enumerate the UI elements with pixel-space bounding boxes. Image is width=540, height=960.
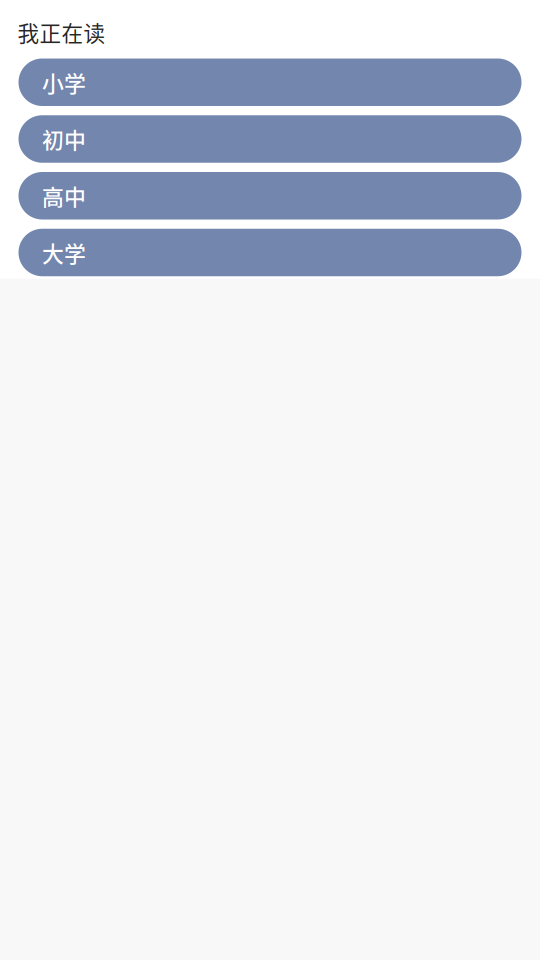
- button[interactable]: 高中: [18, 172, 521, 219]
- staticText: 高中: [42, 180, 86, 212]
- staticText: 初中: [42, 123, 86, 155]
- button[interactable]: 大学: [18, 229, 521, 276]
- staticText: 大学: [42, 237, 86, 268]
- staticText: 小学: [42, 66, 86, 98]
- button[interactable]: 初中: [18, 115, 521, 163]
- staticText: 我正在读: [17, 16, 105, 48]
- button[interactable]: 小学: [18, 58, 521, 106]
